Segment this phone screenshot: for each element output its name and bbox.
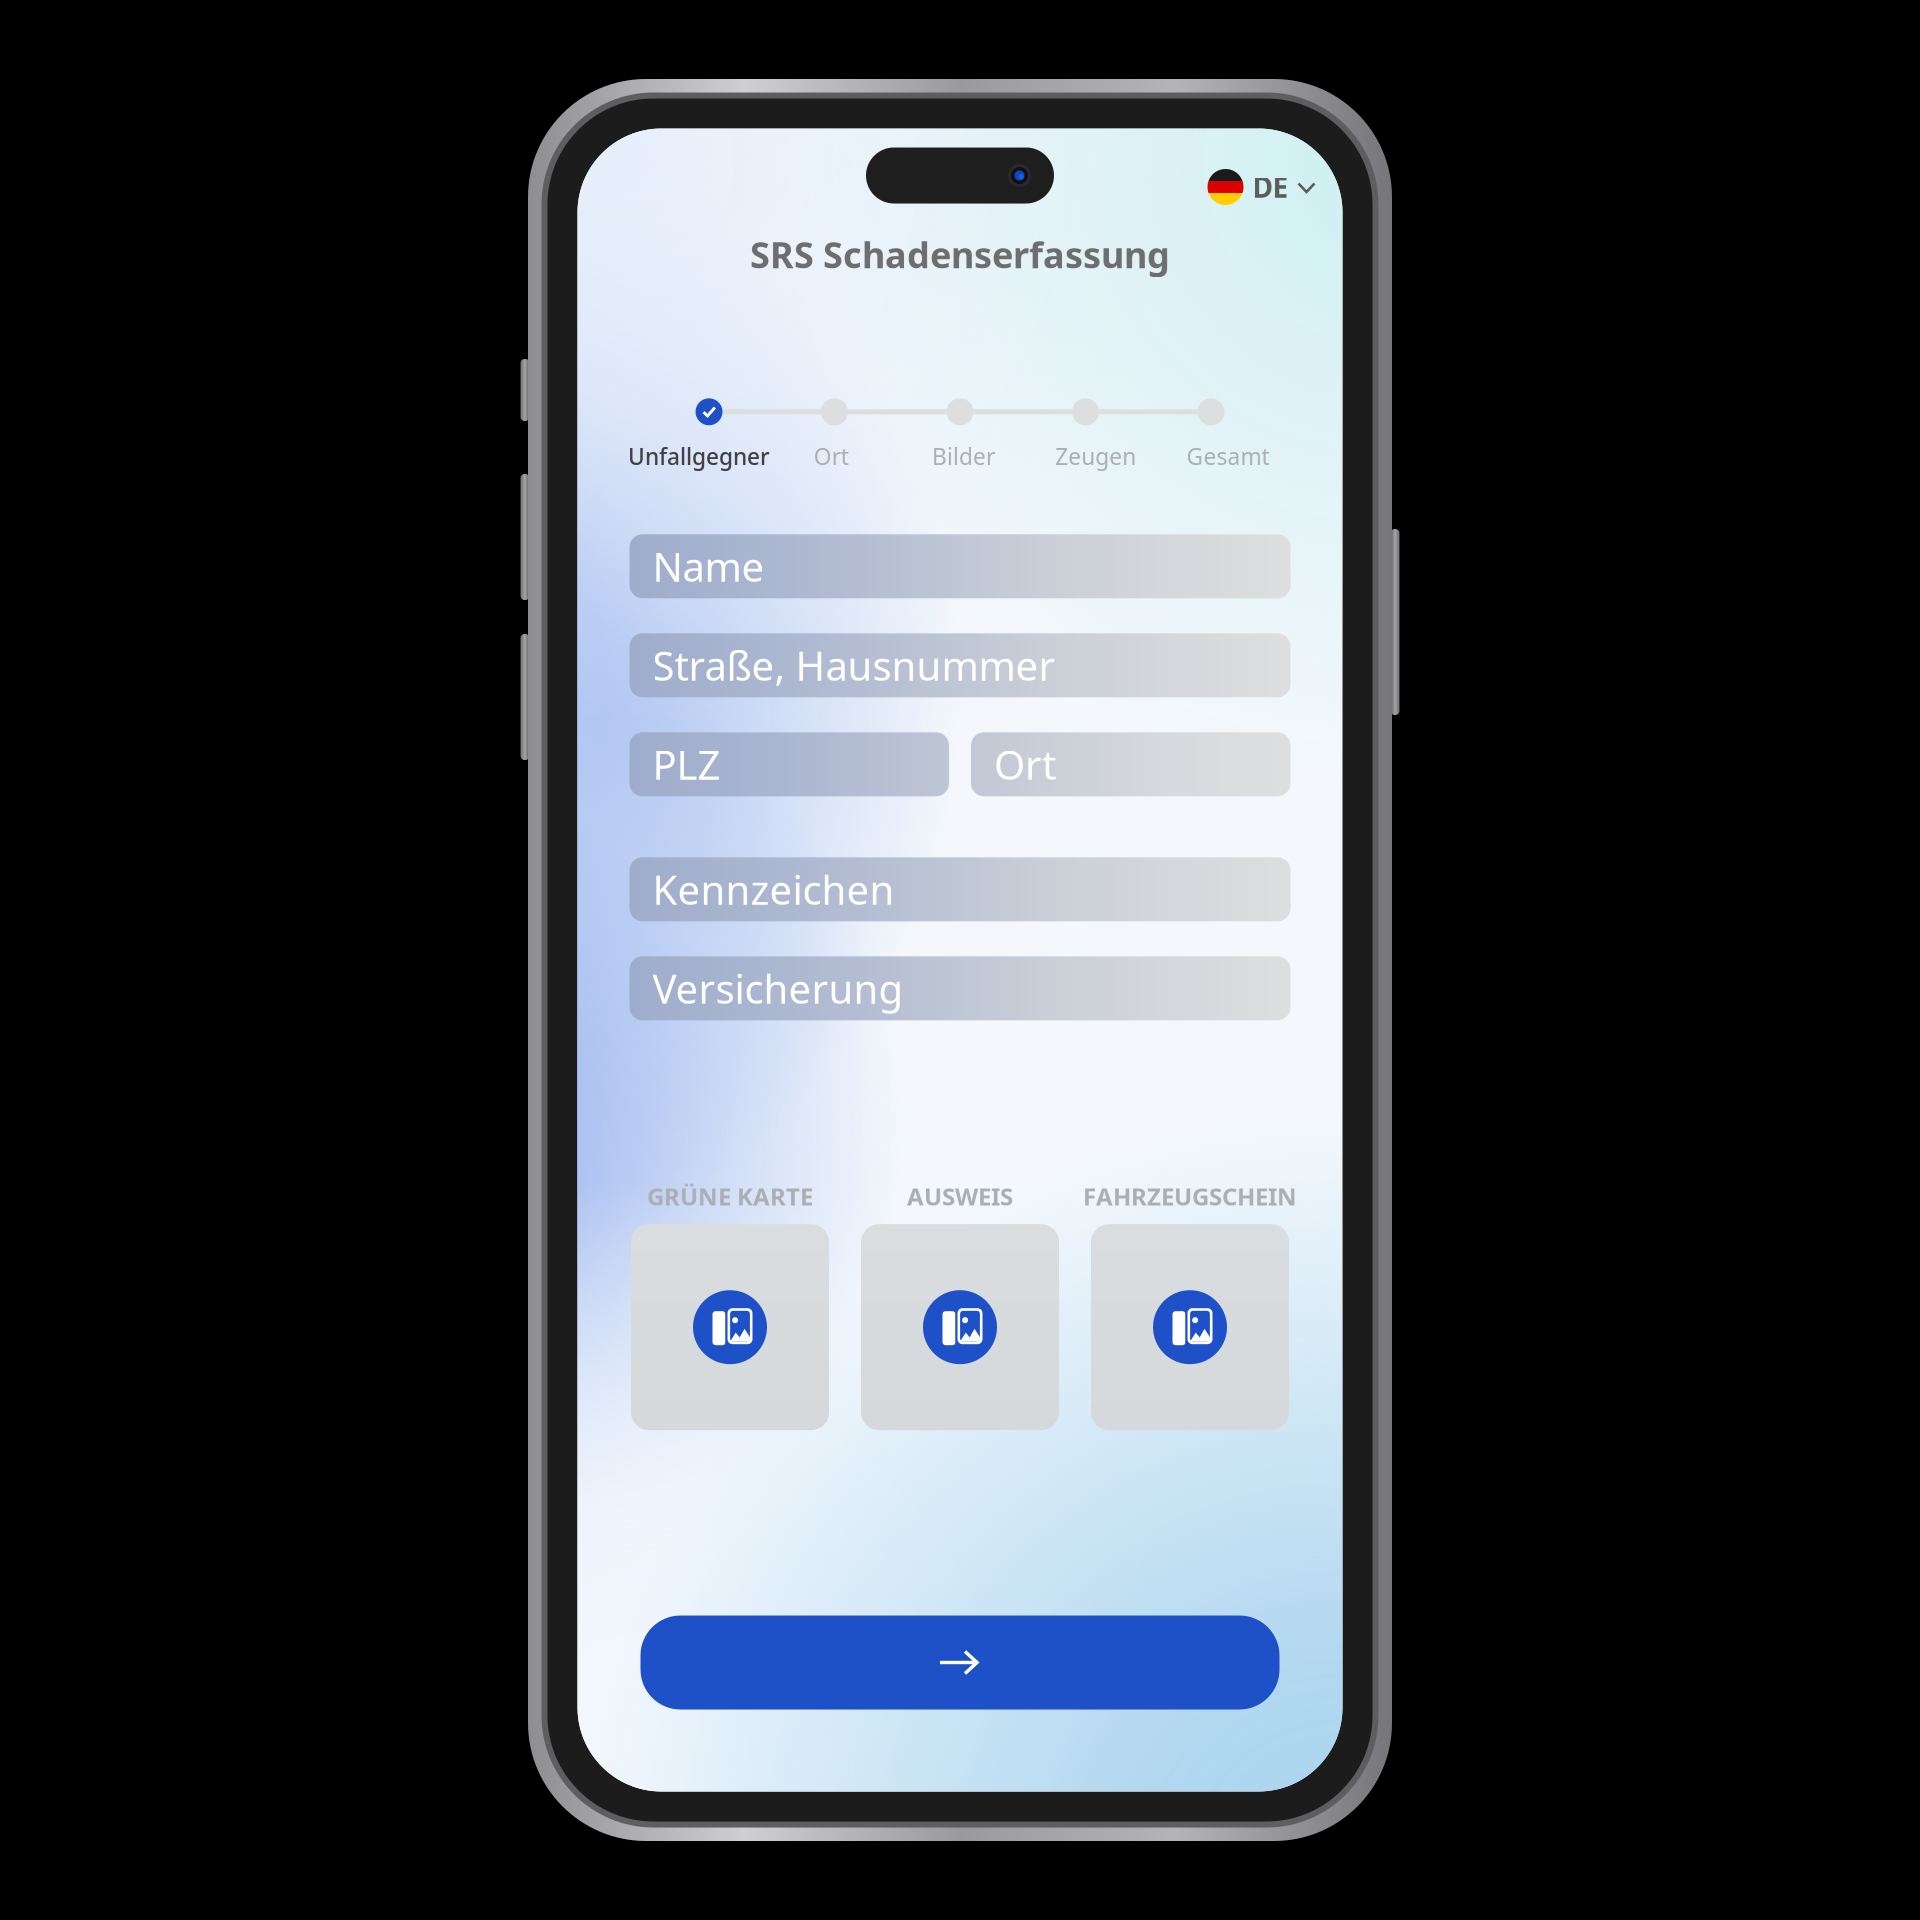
- staticText: PLZ: [652, 738, 720, 791]
- button[interactable]: Versicherung: [629, 956, 1290, 1020]
- button[interactable]: Sprache: Deutsch: [1207, 168, 1315, 206]
- staticText: Gesamt: [1187, 441, 1270, 471]
- button[interactable]: Kennzeichen: [629, 857, 1290, 921]
- staticText: Unfallgegner: [628, 441, 770, 471]
- staticText: GRÜNE KARTE: [647, 1180, 813, 1212]
- staticText: SRS Schadenserfassung: [750, 230, 1170, 278]
- button[interactable]: FAHRZEUGSCHEIN: [1091, 1224, 1289, 1430]
- staticText: Name: [652, 540, 764, 593]
- staticText: Kennzeichen: [652, 863, 894, 916]
- staticText: AUSWEIS: [907, 1180, 1013, 1212]
- button[interactable]: Ort: [971, 732, 1290, 796]
- staticText: Ort: [994, 738, 1056, 791]
- staticText: Versicherung: [652, 962, 903, 1015]
- button[interactable]: Straße, Hausnummer: [629, 633, 1290, 697]
- staticText: Straße, Hausnummer: [652, 639, 1055, 692]
- button[interactable]: Name: [629, 534, 1290, 598]
- staticText: Ort: [814, 441, 849, 471]
- staticText: Bilder: [932, 441, 995, 471]
- button[interactable]: GRÜNE KARTE: [631, 1224, 829, 1430]
- staticText: FAHRZEUGSCHEIN: [1083, 1180, 1297, 1212]
- button[interactable]: PLZ: [629, 732, 949, 796]
- staticText: DE: [1252, 168, 1288, 206]
- staticText: Zeugen: [1055, 441, 1136, 471]
- button[interactable]: Weiter: [640, 1615, 1279, 1709]
- button[interactable]: AUSWEIS: [861, 1224, 1059, 1430]
